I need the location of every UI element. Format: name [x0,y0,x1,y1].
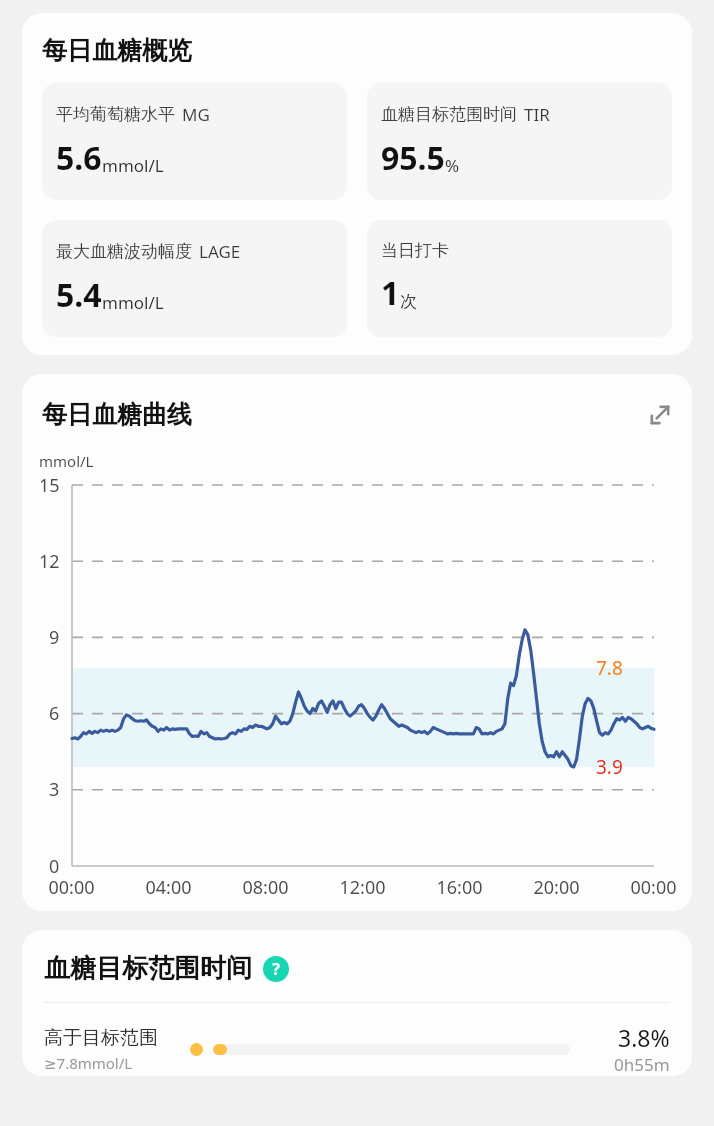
staticText: LAGE [199,240,241,263]
button[interactable]: 当日打卡 [367,220,672,337]
staticText: ≥7.8mmol/L [44,1053,133,1073]
other: Help [263,956,289,982]
staticText: 95.5 [381,136,445,180]
staticText: mmol/L [102,154,164,177]
staticText: 5.6 [56,136,102,180]
staticText: mmol/L [102,291,164,314]
button[interactable]: 每日血糖概览 [22,13,692,355]
staticText: % [445,154,460,177]
button[interactable]: 血糖目标范围时间 [367,83,672,200]
button[interactable]: 最大血糖波动幅度 [42,220,347,337]
staticText: 最大血糖波动幅度 [56,241,192,262]
staticText: 每日血糖曲线 [42,399,192,430]
button[interactable]: Expand chart [643,398,677,432]
staticText: MG [182,103,210,126]
staticText: 3.8% [618,1022,670,1053]
staticText: 每日血糖概览 [42,35,192,66]
staticText: 0h55m [614,1053,670,1076]
staticText: 高于目标范围 [44,1026,158,1050]
staticText: 当日打卡 [381,240,449,261]
staticText: 平均葡萄糖水平 [56,104,175,125]
staticText: 5.4 [56,273,102,317]
staticText: 次 [400,291,417,312]
staticText: ? [272,958,280,980]
staticText: TIR [524,103,550,126]
button[interactable]: 血糖目标范围时间 [44,952,670,985]
button[interactable]: 高于目标范围 [44,1022,670,1076]
staticText: 1 [381,271,400,315]
staticText: 血糖目标范围时间 [44,952,252,985]
button[interactable]: 平均葡萄糖水平 [42,83,347,200]
staticText: 血糖目标范围时间 [381,104,517,125]
